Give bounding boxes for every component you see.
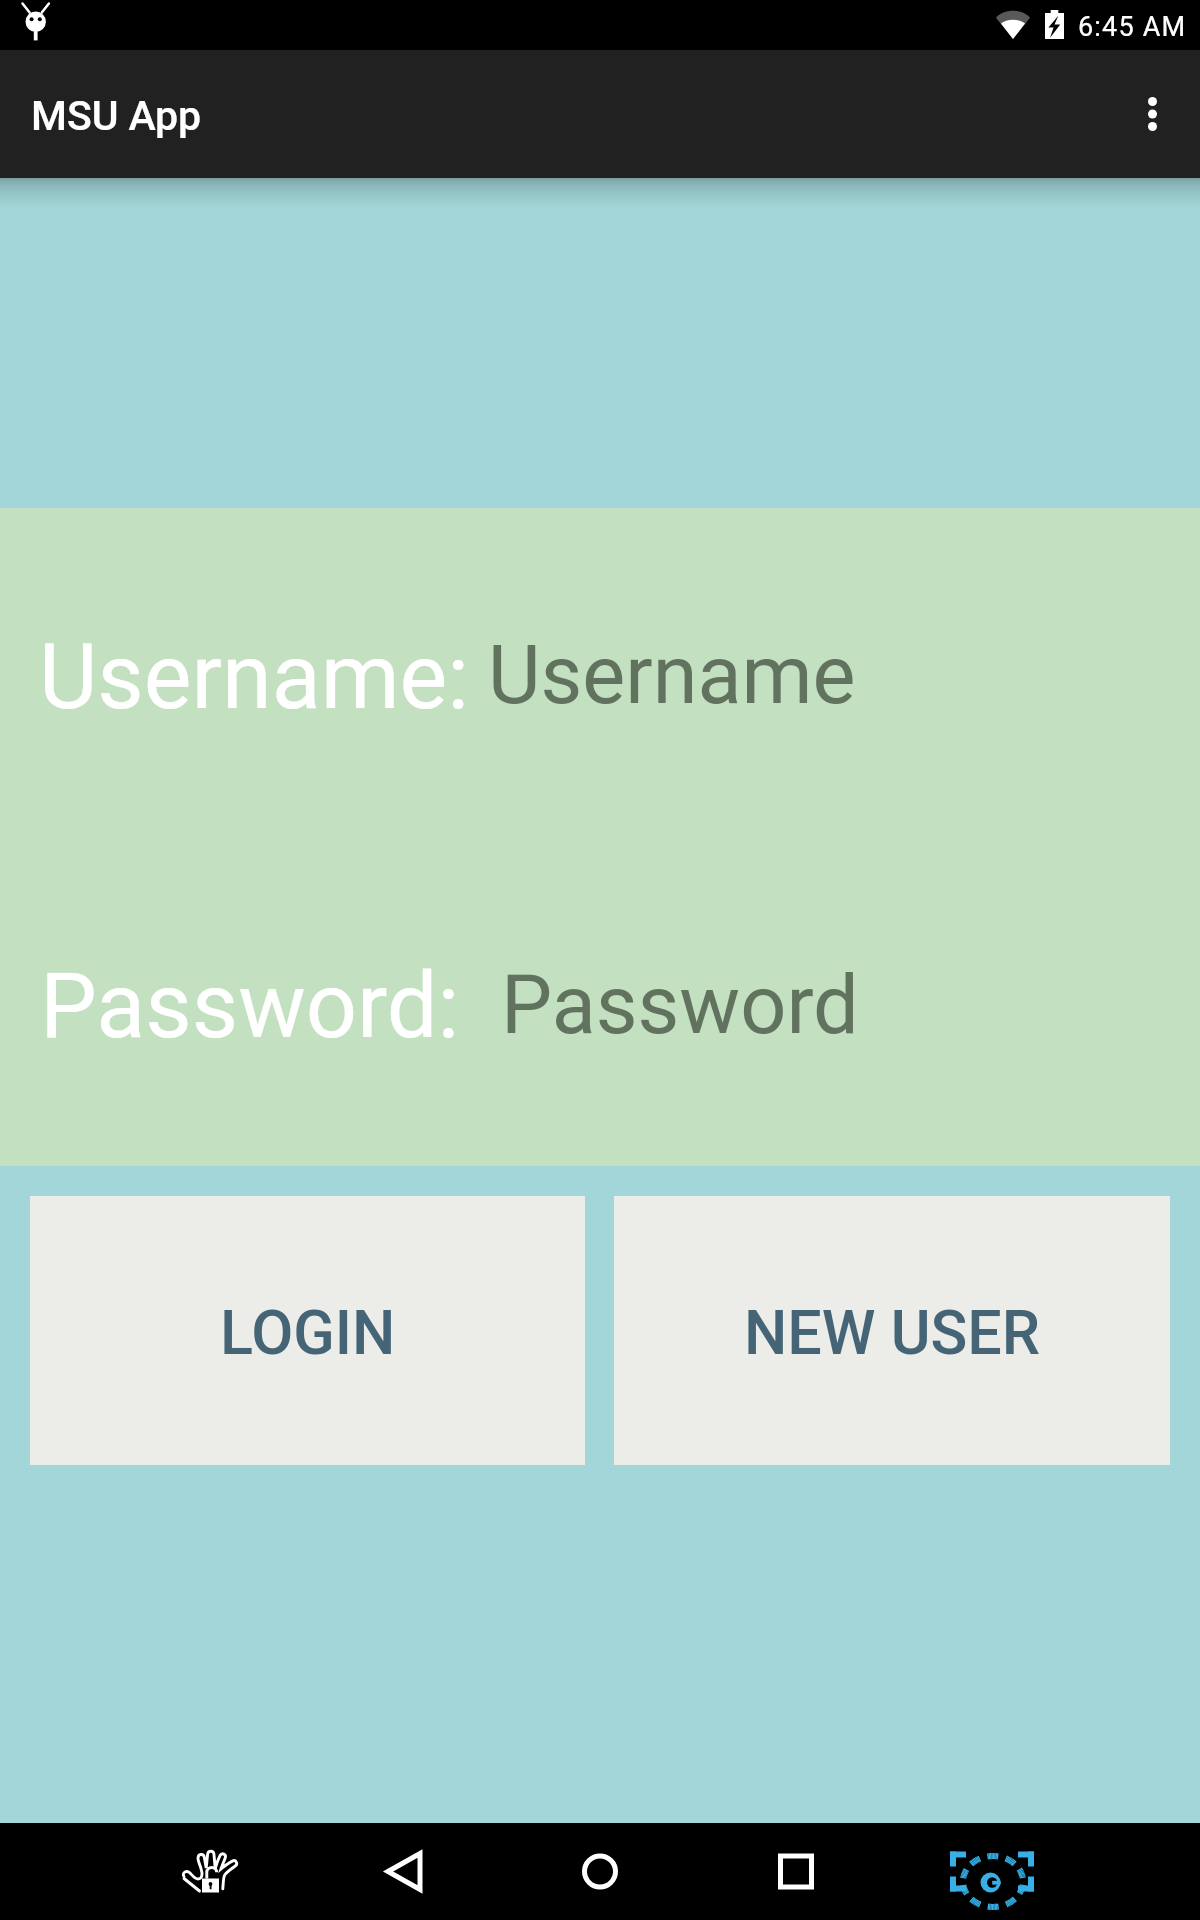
button[interactable]: LOGIN [30, 1196, 585, 1465]
staticText: LOGIN [220, 1297, 396, 1368]
button[interactable]: Password input field [501, 930, 1151, 1055]
button[interactable]: NEW USER [614, 1196, 1170, 1465]
staticText: Username: [39, 625, 492, 730]
staticText: Password [501, 958, 859, 1053]
staticText: MSU App [31, 92, 202, 140]
staticText: NEW USER [744, 1297, 1040, 1368]
button[interactable]: Back [349, 1823, 459, 1920]
button[interactable]: Home [545, 1823, 655, 1920]
staticText: Username [488, 628, 856, 723]
button[interactable]: Screenshot [937, 1823, 1047, 1920]
button[interactable]: Accessibility [155, 1823, 265, 1920]
button[interactable]: Recent apps [741, 1823, 851, 1920]
staticText: Password: [40, 954, 482, 1059]
staticText: 6:45 AM [1078, 11, 1187, 43]
button[interactable]: Username input field [488, 600, 1148, 725]
button[interactable]: More options [1096, 50, 1200, 178]
